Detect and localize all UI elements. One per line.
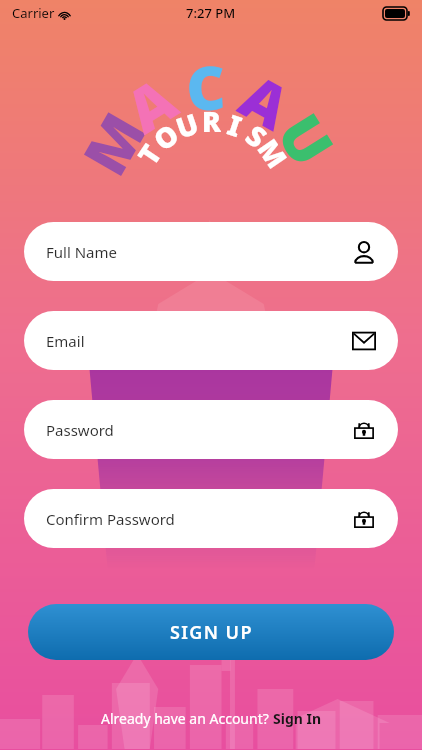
staticText: Sign In: [273, 709, 322, 728]
staticText: S: [240, 116, 275, 155]
button[interactable]: Already have an Account?: [101, 709, 322, 728]
staticText: U: [171, 103, 203, 145]
staticText: R: [202, 102, 221, 138]
staticText: M: [63, 97, 155, 184]
staticText: Carrier: [12, 4, 55, 22]
button[interactable]: Password: [24, 400, 398, 459]
staticText: I: [224, 105, 247, 143]
other: Email: [352, 329, 376, 353]
staticText: 7:27 PM: [186, 4, 236, 22]
staticText: Full Name: [46, 242, 117, 262]
staticText: C: [184, 45, 227, 119]
button[interactable]: SIGN UP: [28, 604, 394, 660]
staticText: A: [231, 55, 305, 139]
other: Name: [352, 240, 376, 264]
staticText: O: [145, 114, 185, 157]
button[interactable]: Email: [24, 311, 398, 370]
staticText: Password: [46, 420, 114, 440]
button[interactable]: Confirm Password: [24, 489, 398, 548]
staticText: SIGN UP: [170, 620, 253, 645]
other: Password: [352, 418, 376, 442]
staticText: M: [251, 131, 297, 175]
other: Password: [352, 507, 376, 531]
staticText: Email: [46, 331, 85, 351]
staticText: Already have an Account?: [101, 709, 273, 728]
staticText: U: [268, 98, 354, 176]
staticText: Confirm Password: [46, 509, 175, 529]
staticText: T: [129, 136, 168, 171]
staticText: A: [110, 58, 186, 142]
button[interactable]: Full Name: [24, 222, 398, 281]
